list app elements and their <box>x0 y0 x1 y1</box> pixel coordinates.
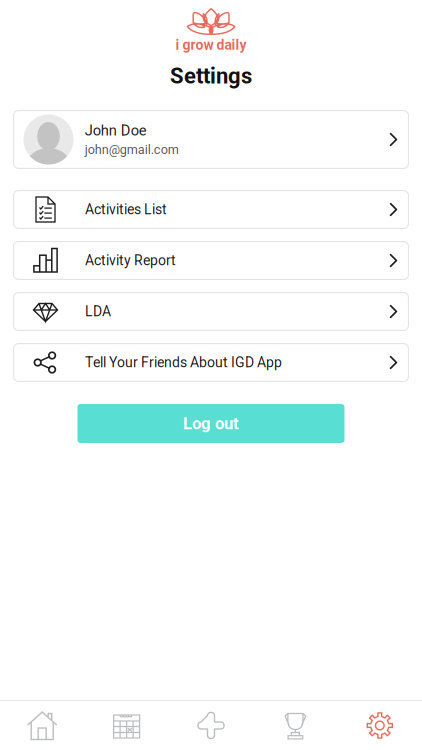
button[interactable]: John Doe <box>13 110 409 169</box>
button[interactable]: LDA <box>13 292 409 331</box>
staticText: Activities List <box>85 201 167 218</box>
staticText: John Doe <box>85 122 147 139</box>
button[interactable]: Achievements <box>253 701 338 750</box>
staticText: Log out <box>183 414 239 433</box>
button[interactable]: Add activity <box>169 701 253 750</box>
button[interactable]: Settings <box>338 701 422 750</box>
button[interactable]: Activity Report <box>13 241 409 280</box>
staticText: Settings <box>170 63 252 89</box>
staticText: john@gmail.com <box>85 142 179 157</box>
staticText: Tell Your Friends About IGD App <box>85 354 282 371</box>
button[interactable]: Calendar <box>84 701 169 750</box>
button[interactable]: Activities List <box>13 190 409 229</box>
staticText: Activity Report <box>85 252 176 269</box>
button[interactable]: Home <box>0 701 84 750</box>
staticText: i grow daily <box>175 37 246 53</box>
staticText: LDA <box>85 303 111 320</box>
button[interactable]: Tell Your Friends About IGD App <box>13 343 409 382</box>
button[interactable]: Log out <box>77 404 344 443</box>
